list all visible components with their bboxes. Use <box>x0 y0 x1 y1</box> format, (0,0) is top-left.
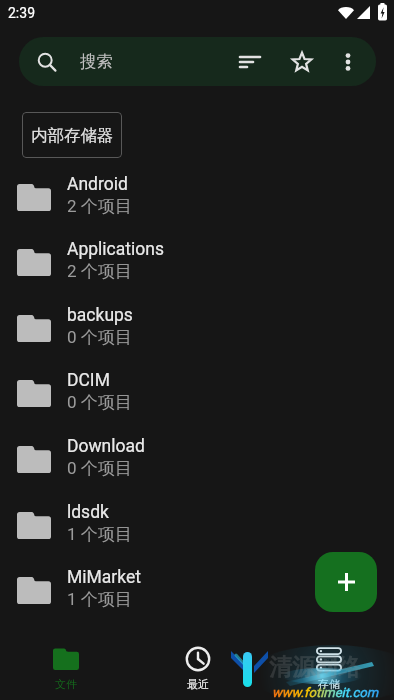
button[interactable]: Add <box>315 552 377 612</box>
staticText: Download <box>67 436 145 457</box>
staticText: 0 个项目 <box>67 327 132 348</box>
staticText: 0 个项目 <box>67 392 132 413</box>
staticText: 内部存储器 <box>31 125 114 146</box>
staticText: MiMarket <box>67 567 141 588</box>
button[interactable]: 搜索 <box>19 37 376 86</box>
button[interactable]: ldsdk <box>0 493 394 558</box>
staticText: Android <box>67 174 128 195</box>
staticText: 文件 <box>55 677 77 691</box>
staticText: 清源网络 <box>269 653 361 682</box>
button[interactable]: 内部存储器 <box>22 112 122 158</box>
staticText: 2 个项目 <box>67 261 132 282</box>
staticText: 最近 <box>187 677 209 691</box>
staticText: ldsdk <box>67 502 109 523</box>
button[interactable]: 存储 <box>263 628 394 700</box>
staticText: backups <box>67 305 133 326</box>
staticText: Applications <box>67 239 164 260</box>
staticText: 2:39 <box>8 5 35 21</box>
button[interactable]: Favorites <box>282 42 322 82</box>
staticText: 0 个项目 <box>67 458 132 479</box>
button[interactable]: Applications <box>0 230 394 295</box>
staticText: DCIM <box>67 370 110 391</box>
staticText: 2 个项目 <box>67 196 132 217</box>
staticText: www.fotimeit.com <box>272 685 379 700</box>
button[interactable]: Download <box>0 427 394 492</box>
button[interactable]: backups <box>0 296 394 361</box>
button[interactable]: DCIM <box>0 361 394 426</box>
button[interactable]: MiMarket <box>0 558 394 623</box>
staticText: 1 个项目 <box>67 589 132 610</box>
button[interactable]: Android <box>0 165 394 230</box>
button[interactable]: More options <box>328 42 368 82</box>
staticText: 1 个项目 <box>67 524 132 545</box>
button[interactable]: 最近 <box>132 628 263 700</box>
staticText: 搜索 <box>80 51 113 72</box>
staticText: 存储 <box>318 677 340 691</box>
button[interactable]: 文件 <box>0 628 132 700</box>
button[interactable]: Sort <box>230 42 270 82</box>
